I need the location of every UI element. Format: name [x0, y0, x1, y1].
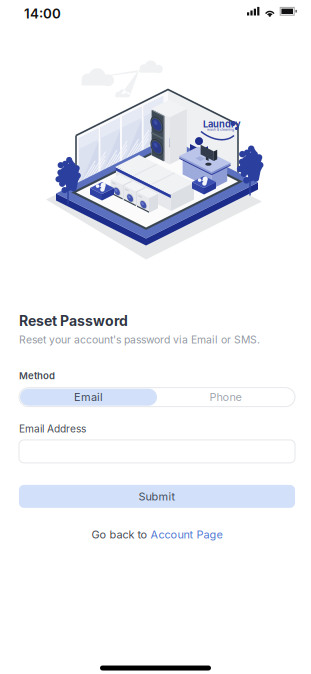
staticText: Submit	[138, 490, 175, 503]
staticText: Method	[19, 370, 55, 382]
button[interactable]: Email	[20, 389, 157, 406]
staticText: wash & cleaning	[207, 127, 234, 132]
staticText: Email	[74, 390, 103, 404]
staticText: Email Address	[19, 423, 86, 435]
staticText: Go back to	[91, 528, 150, 541]
staticText: 14:00	[24, 5, 61, 22]
staticText: Laundry	[203, 118, 241, 130]
button[interactable]: Submit	[19, 485, 295, 508]
staticText: Reset your account's password via Email …	[19, 333, 260, 346]
staticText: Account Page	[150, 528, 222, 541]
staticText: Reset Password	[19, 312, 128, 329]
button[interactable]: Phone	[157, 389, 294, 406]
staticText: Phone	[209, 390, 241, 404]
button[interactable]: Account Page	[150, 528, 222, 541]
